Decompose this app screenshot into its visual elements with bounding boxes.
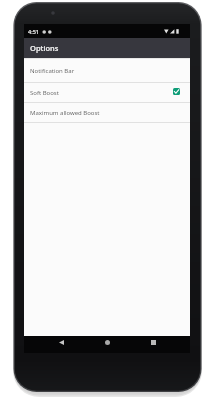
button[interactable] (95, 334, 119, 351)
staticText: Maximum allowed Boost (30, 109, 100, 117)
staticText: 4:51 (28, 28, 39, 35)
button[interactable]: Notification Bar (24, 59, 190, 82)
button[interactable] (49, 334, 73, 351)
staticText: Options (30, 43, 59, 53)
staticText: Notification Bar (30, 67, 75, 75)
button[interactable]: Maximum allowed Boost (24, 103, 190, 122)
button[interactable]: Soft Boost (24, 83, 190, 102)
button[interactable] (141, 334, 165, 351)
button[interactable]: Options (30, 43, 59, 53)
staticText: Soft Boost (30, 89, 59, 97)
